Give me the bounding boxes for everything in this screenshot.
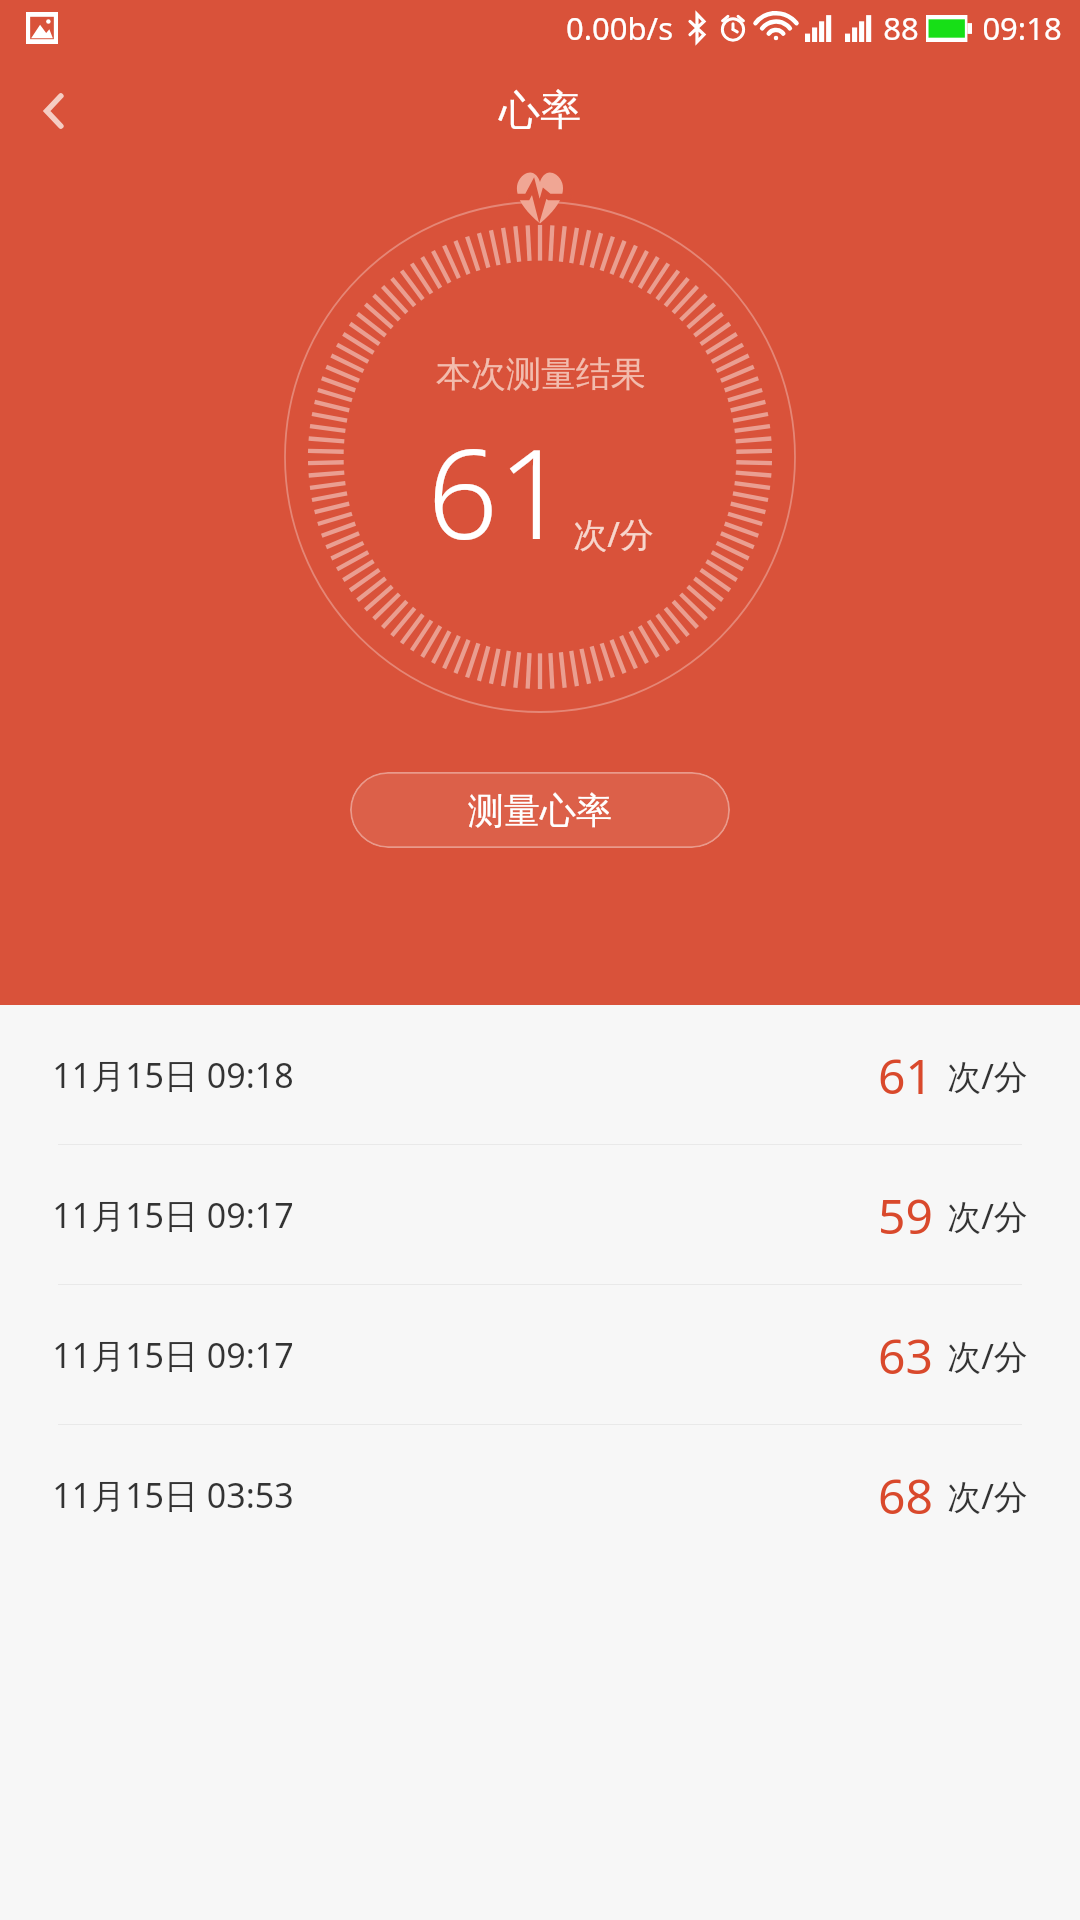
button[interactable]: 11月15日 09:17 xyxy=(0,1285,1080,1425)
button[interactable]: 11月15日 09:18 xyxy=(0,1005,1080,1145)
staticText: 11月15日 03:53 xyxy=(52,1472,294,1518)
staticText: 11月15日 09:17 xyxy=(52,1192,294,1238)
staticText: 次/分 xyxy=(947,1473,1028,1519)
staticText: 59 xyxy=(878,1183,933,1248)
staticText: 88 xyxy=(883,7,919,49)
staticText: 63 xyxy=(878,1323,933,1388)
staticText: 次/分 xyxy=(947,1053,1028,1099)
staticText: 61 xyxy=(427,406,569,575)
staticText: 61 xyxy=(878,1043,933,1108)
staticText: 次/分 xyxy=(947,1193,1028,1239)
staticText: 11月15日 09:18 xyxy=(52,1052,294,1098)
button[interactable]: 11月15日 09:17 xyxy=(0,1145,1080,1285)
button[interactable]: Back xyxy=(8,64,102,158)
button[interactable]: 测量心率 xyxy=(350,772,730,848)
staticText: 次/分 xyxy=(947,1333,1028,1379)
staticText: 09:18 xyxy=(982,7,1062,49)
staticText: 本次测量结果 xyxy=(436,352,646,396)
staticText: 68 xyxy=(878,1463,933,1528)
staticText: 11月15日 09:17 xyxy=(52,1332,294,1378)
button[interactable]: 11月15日 03:53 xyxy=(0,1425,1080,1565)
staticText: 次/分 xyxy=(573,511,654,557)
staticText: 测量心率 xyxy=(468,788,612,833)
staticText: 0.00b/s xyxy=(566,7,673,49)
staticText: 心率 xyxy=(499,85,581,137)
